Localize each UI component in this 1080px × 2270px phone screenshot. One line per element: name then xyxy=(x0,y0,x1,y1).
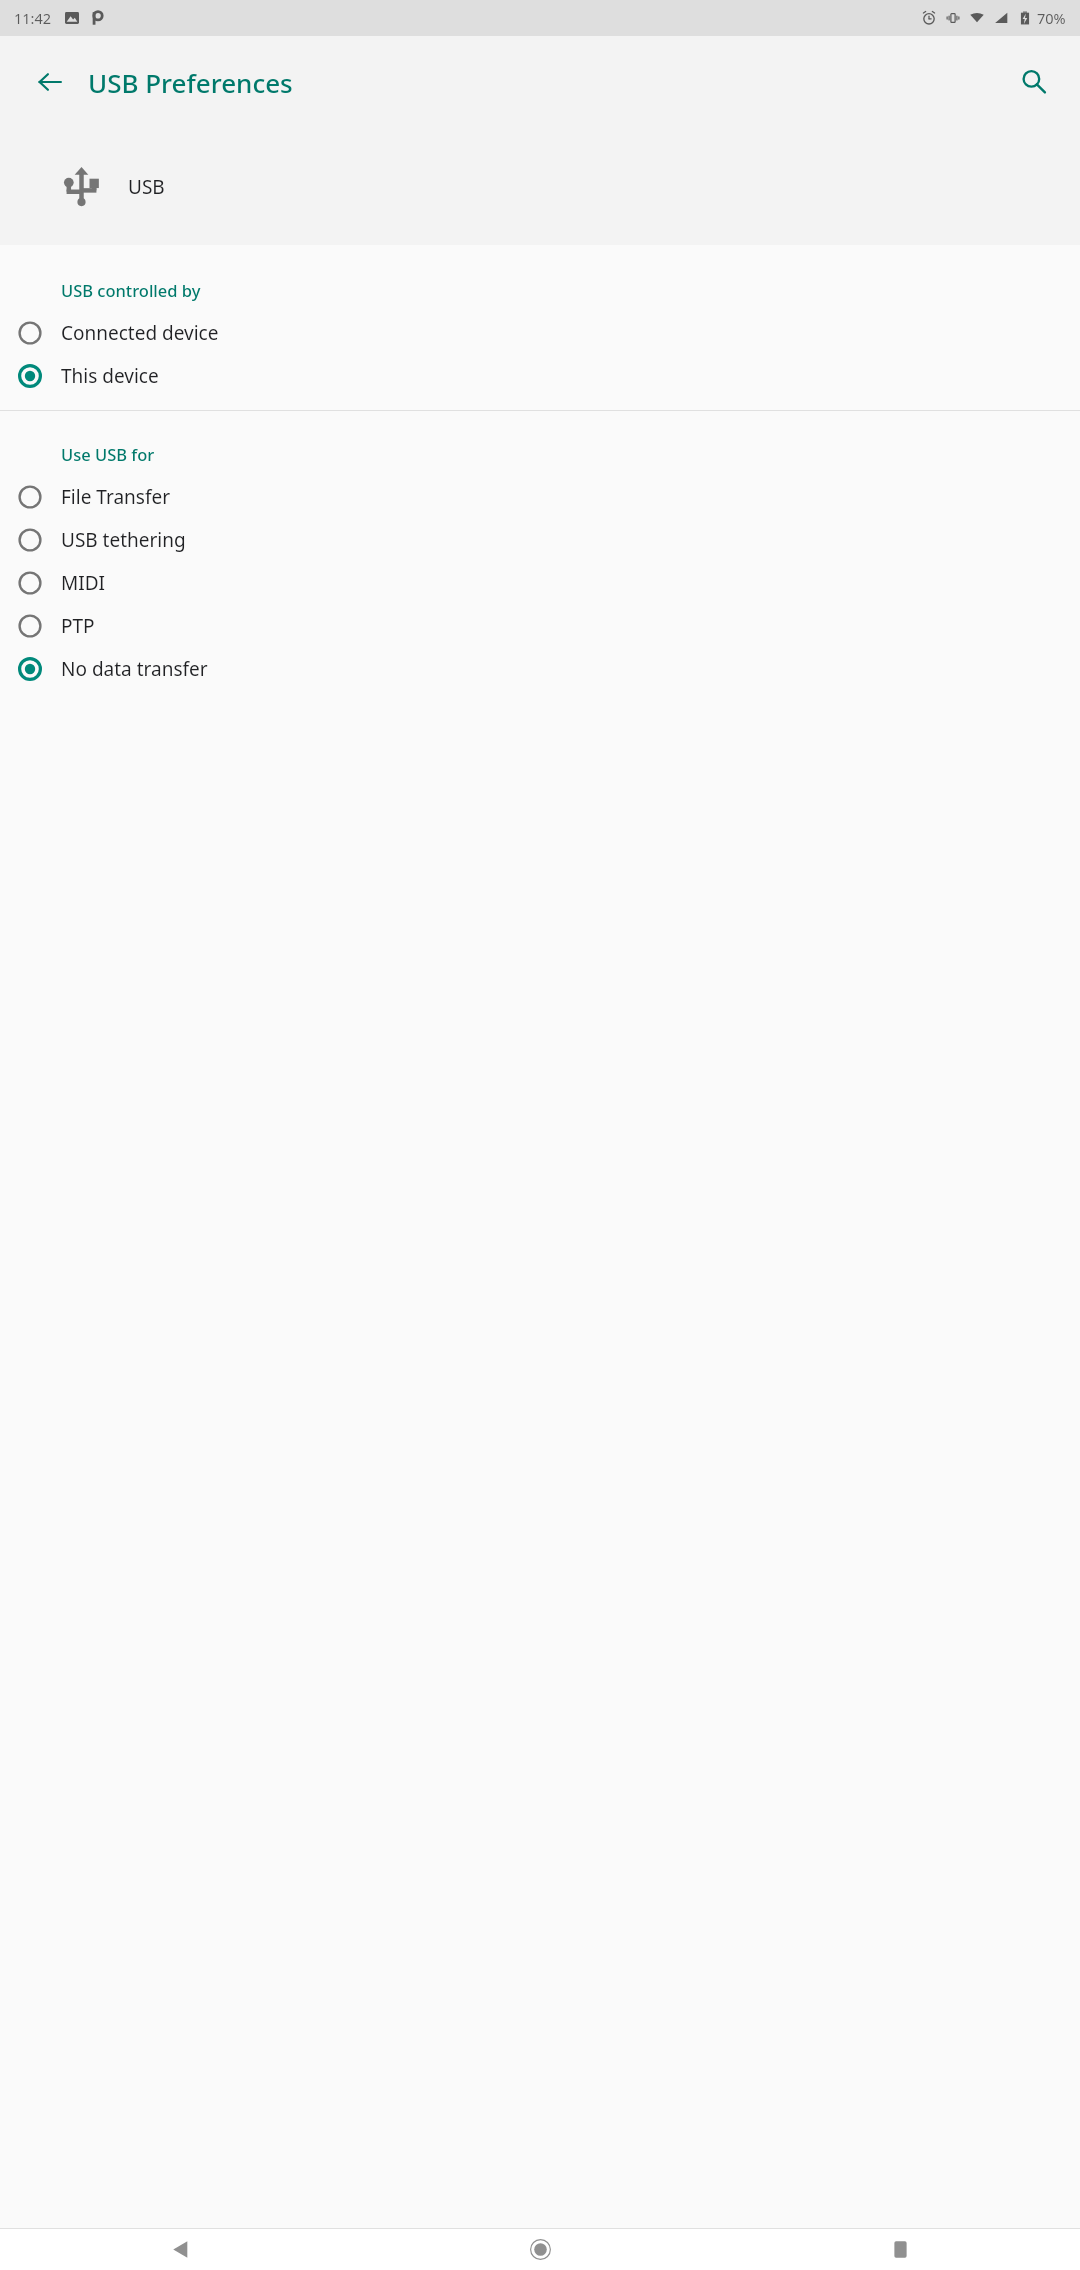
button[interactable]: PTP xyxy=(0,604,1080,647)
button[interactable]: No data transfer xyxy=(0,647,1080,690)
staticText: USB xyxy=(128,174,165,200)
staticText: PTP xyxy=(61,613,95,639)
button[interactable]: File Transfer xyxy=(0,475,1080,518)
staticText: MIDI xyxy=(61,570,105,596)
staticText: USB Preferences xyxy=(88,65,293,100)
button[interactable]: Recent apps xyxy=(720,2229,1080,2270)
staticText: USB tethering xyxy=(61,527,186,553)
staticText: USB controlled by xyxy=(61,279,201,301)
button[interactable]: Search xyxy=(1009,57,1059,107)
staticText: File Transfer xyxy=(61,484,171,510)
button[interactable]: Connected device xyxy=(0,311,1080,354)
button[interactable]: MIDI xyxy=(0,561,1080,604)
button[interactable]: This device xyxy=(0,354,1080,397)
button[interactable]: USB tethering xyxy=(0,518,1080,561)
button[interactable]: Home xyxy=(360,2229,720,2270)
staticText: 11:42 xyxy=(14,8,52,28)
staticText: 70% xyxy=(1037,8,1066,28)
staticText: Use USB for xyxy=(61,443,155,465)
staticText: This device xyxy=(61,363,159,389)
staticText: Connected device xyxy=(61,320,219,346)
button[interactable]: Back xyxy=(0,2229,360,2270)
button[interactable]: Back xyxy=(25,57,75,107)
staticText: No data transfer xyxy=(61,656,208,682)
